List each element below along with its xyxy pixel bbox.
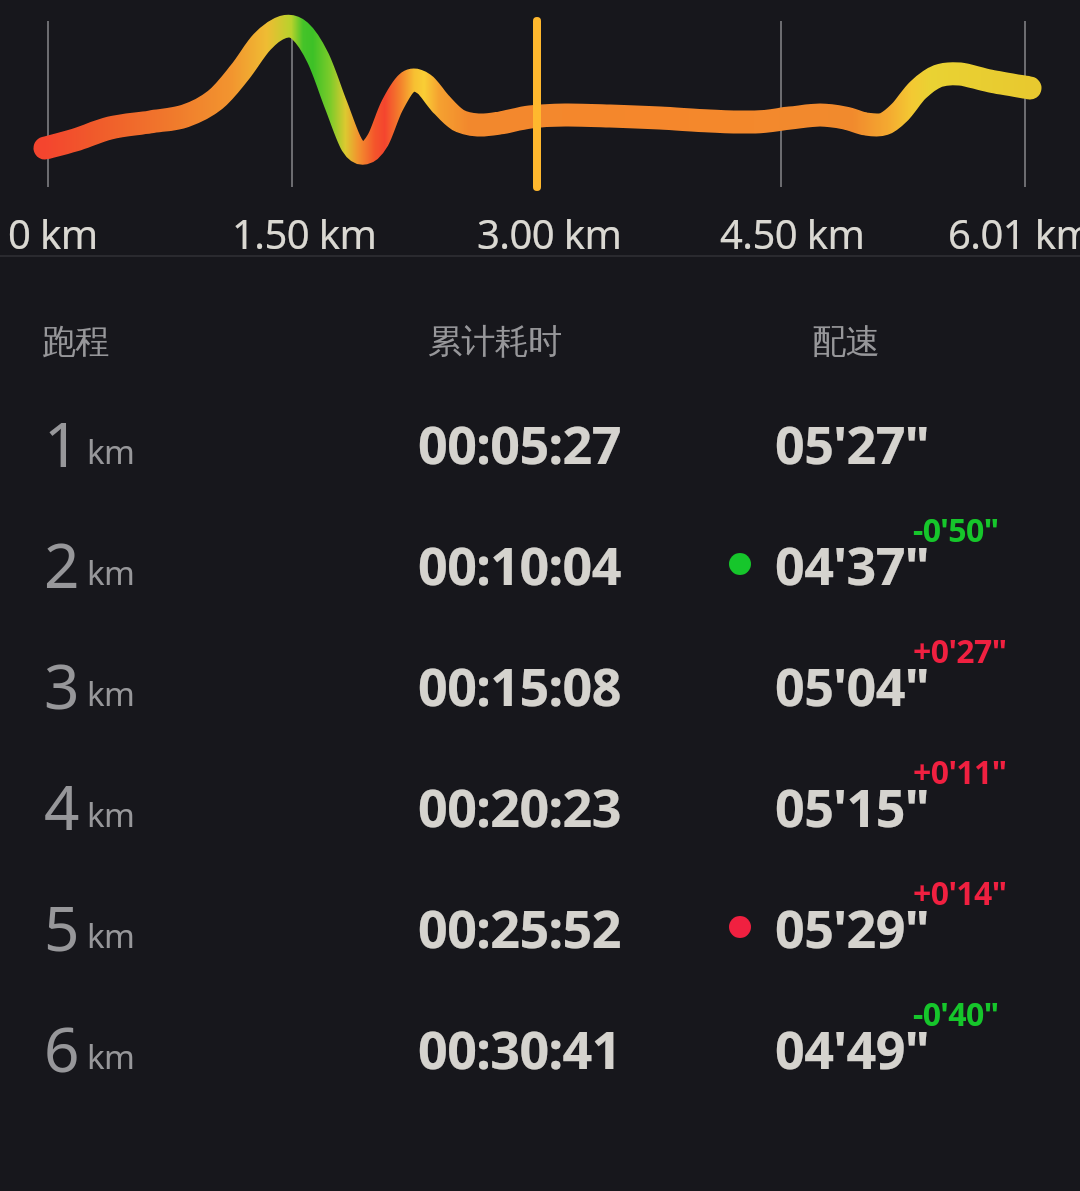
button[interactable]: Run lap splits bbox=[0, 0, 1080, 1191]
